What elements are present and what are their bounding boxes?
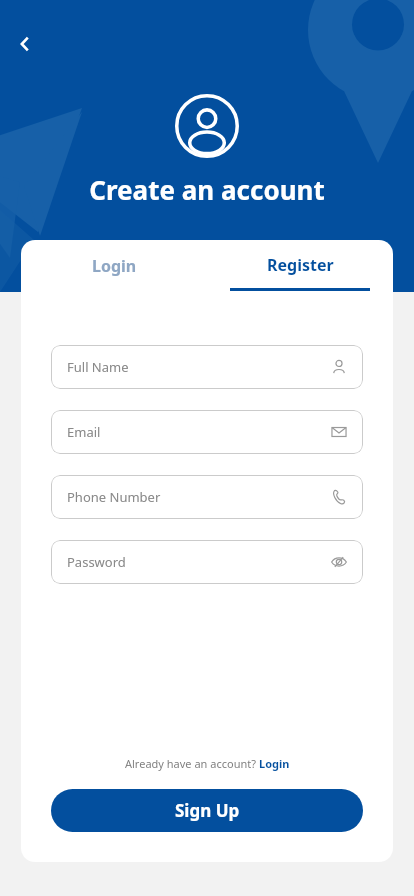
button[interactable]: Password <box>51 540 363 584</box>
button[interactable]: Full Name <box>51 345 363 389</box>
staticText: Email <box>67 423 101 441</box>
button[interactable]: Sign Up <box>51 789 363 832</box>
staticText: Password <box>67 553 126 571</box>
button[interactable]: Login <box>21 240 207 296</box>
button[interactable]: Login <box>259 756 290 771</box>
button[interactable]: Email <box>51 410 363 454</box>
staticText: Create an account <box>89 172 325 207</box>
staticText: Login <box>92 255 137 277</box>
staticText: Full Name <box>67 358 129 376</box>
staticText: Already have an account? <box>125 756 259 771</box>
button[interactable]: Phone Number <box>51 475 363 519</box>
staticText: Phone Number <box>67 488 161 506</box>
staticText: Login <box>259 756 290 771</box>
button[interactable]: Register <box>207 240 393 296</box>
staticText: Register <box>267 254 334 276</box>
staticText: Sign Up <box>175 799 240 822</box>
button[interactable]: Back <box>6 25 44 63</box>
